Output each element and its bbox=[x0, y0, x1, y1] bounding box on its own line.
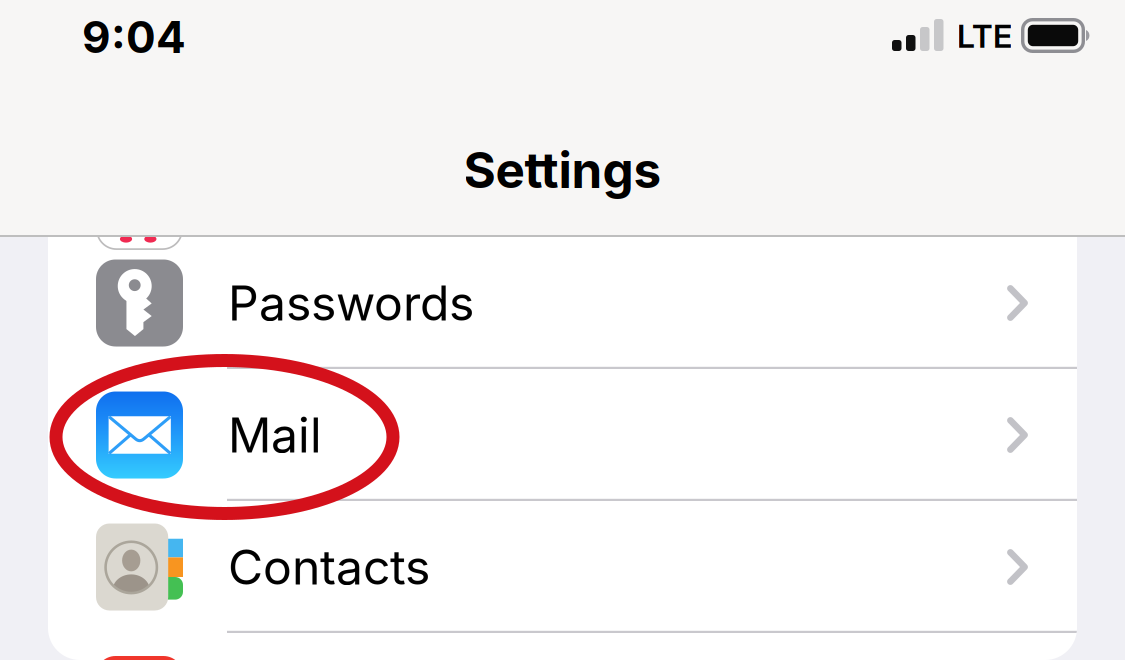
staticText: LTE bbox=[957, 17, 1012, 55]
staticText: Settings bbox=[463, 140, 661, 200]
button[interactable]: Mail bbox=[48, 369, 1077, 501]
staticText: Mail bbox=[228, 406, 322, 464]
staticText: Contacts bbox=[228, 538, 430, 596]
staticText: Passwords bbox=[228, 274, 474, 332]
staticText: 9:04 bbox=[82, 10, 186, 64]
button[interactable]: Contacts bbox=[48, 501, 1077, 633]
button[interactable]: Passwords bbox=[48, 237, 1077, 369]
